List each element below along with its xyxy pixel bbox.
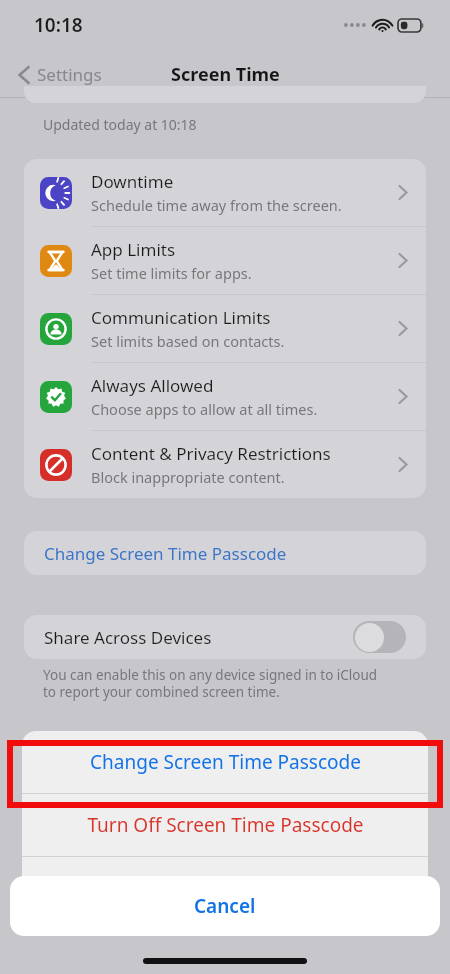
staticText: Updated today at 10:18: [43, 115, 197, 134]
staticText: Schedule time away from the screen.: [91, 195, 342, 215]
staticText: Turn Off Screen Time Passcode: [87, 812, 364, 838]
button[interactable]: Downtime: [24, 159, 426, 226]
button[interactable]: Always Allowed: [24, 363, 426, 430]
staticText: Screen Time: [171, 62, 280, 87]
staticText: App Limits: [91, 238, 176, 261]
staticText: Downtime: [91, 170, 174, 193]
button[interactable]: Change Screen Time Passcode: [24, 531, 426, 575]
staticText: Turn Off Screen Time: [131, 875, 319, 901]
button[interactable]: Share Across Devices toggle, off: [353, 621, 406, 653]
staticText: Share Across Devices: [44, 626, 212, 649]
staticText: Content & Privacy Restrictions: [91, 442, 331, 465]
staticText: Always Allowed: [91, 374, 214, 397]
staticText: Set time limits for apps.: [91, 263, 252, 283]
button[interactable]: Turn Off Screen Time Passcode: [22, 794, 428, 856]
button[interactable]: Settings: [14, 59, 106, 90]
button[interactable]: Content & Privacy Restrictions: [24, 431, 426, 498]
button[interactable]: Change Screen Time Passcode: [22, 731, 428, 793]
staticText: Settings: [37, 63, 102, 86]
button[interactable]: App Limits: [24, 227, 426, 294]
staticText: Choose apps to allow at all times.: [91, 399, 318, 419]
staticText: Change Screen Time Passcode: [44, 542, 287, 565]
staticText: Cancel: [194, 893, 256, 919]
staticText: 10:18: [34, 12, 83, 38]
button[interactable]: Share Across Devices: [24, 615, 426, 659]
button[interactable]: Turn Off Screen Time: [22, 857, 428, 919]
staticText: Change Screen Time Passcode: [90, 749, 361, 775]
button[interactable]: Cancel: [10, 876, 440, 936]
button[interactable]: Communication Limits: [24, 295, 426, 362]
staticText: Set limits based on contacts.: [91, 331, 285, 351]
staticText: Communication Limits: [91, 306, 271, 329]
staticText: Block inappropriate content.: [91, 467, 285, 487]
staticText: You can enable this on any device signed…: [43, 666, 378, 701]
